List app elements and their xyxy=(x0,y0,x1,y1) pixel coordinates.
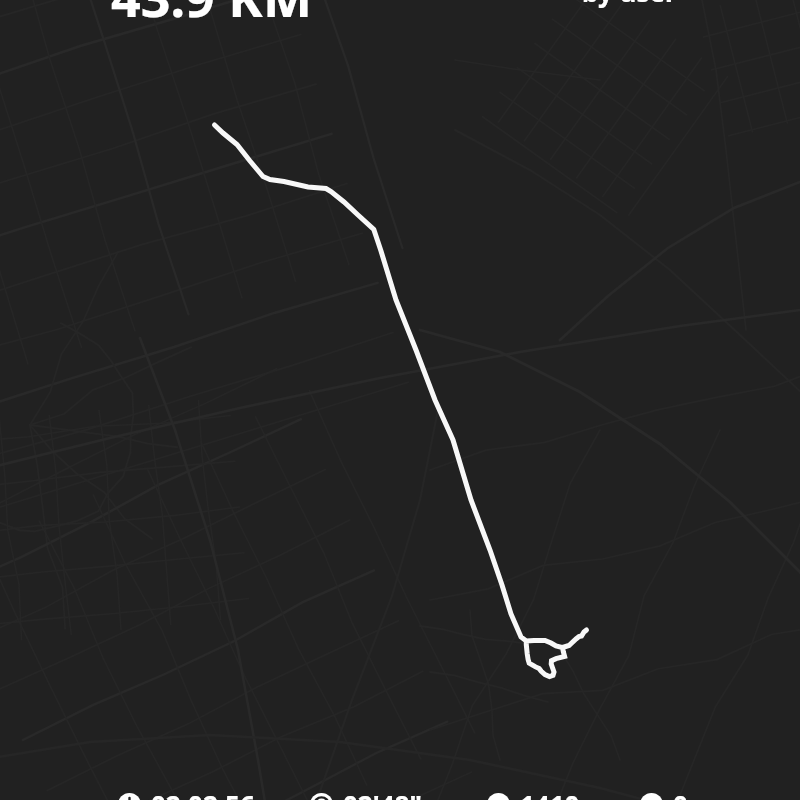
button[interactable]: by user xyxy=(582,0,677,9)
button[interactable]: 0 achievements xyxy=(640,787,688,800)
button[interactable]: Duration 02:02:56 xyxy=(118,787,255,800)
button[interactable]: Activity map xyxy=(0,0,800,800)
staticText: 1410 xyxy=(520,787,580,800)
button[interactable]: Average pace 2 minutes 48 seconds xyxy=(310,787,422,800)
staticText: 0 xyxy=(673,787,688,800)
button[interactable]: 1410 calories xyxy=(487,787,580,800)
staticText: 02'48" xyxy=(343,787,422,800)
staticText: 02:02:56 xyxy=(151,787,255,800)
button[interactable]: 43.9 KM xyxy=(111,0,312,32)
